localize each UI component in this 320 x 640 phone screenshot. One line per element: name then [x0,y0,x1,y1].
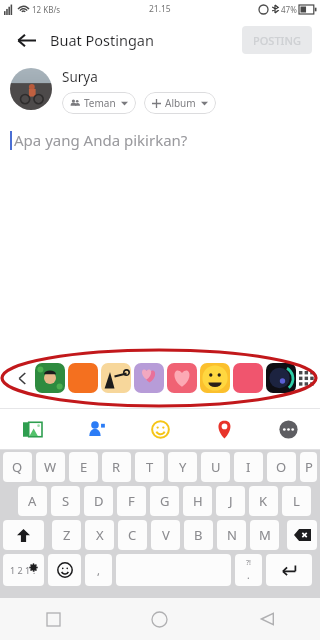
button[interactable]: Sticker [266,363,296,393]
button[interactable]: Sticker [68,363,98,393]
staticText: P [305,458,313,476]
staticText: W [44,458,57,476]
button[interactable]: T [135,452,164,482]
staticText: M [259,526,271,544]
staticText: Teman [84,96,116,110]
button[interactable] [10,68,52,110]
button[interactable]: Sticker [134,363,164,393]
button[interactable]: Check in [192,409,256,449]
button[interactable]: , [85,554,112,586]
button[interactable]: Sticker [101,363,131,393]
button[interactable]: Back [10,24,42,56]
staticText: C [128,526,137,544]
staticText: Buat Postingan [50,30,154,50]
staticText: 1 2 1 ? [10,564,37,576]
staticText: H [193,492,203,510]
staticText: Album [165,96,196,110]
staticText: T [146,458,154,476]
staticText: U [211,458,221,476]
staticText: F [128,492,135,510]
staticText: Surya [62,68,98,86]
staticText: L [293,492,300,510]
button[interactable]: ?! [235,554,262,586]
staticText: O [276,458,287,476]
button[interactable]: Sticker [167,363,197,393]
button[interactable]: F [117,486,146,516]
button[interactable]: Tag people [64,409,128,449]
button[interactable]: L [282,486,311,516]
button[interactable]: Sticker [233,363,263,393]
button[interactable]: More options [256,409,320,449]
button[interactable]: R [102,452,131,482]
button[interactable]: V [151,520,180,550]
button[interactable]: D [84,486,113,516]
staticText: Z [63,526,71,544]
staticText: . [247,568,250,582]
staticText: POSTING [253,33,301,48]
button[interactable]: A [18,486,47,516]
button[interactable]: POSTING [242,26,312,54]
button[interactable]: G [150,486,179,516]
button[interactable]: Feeling [128,409,192,449]
staticText: V [162,526,170,544]
staticText: 12 KB/s [32,4,61,15]
button[interactable]: 1 2 1 ? [3,554,44,586]
staticText: , [97,563,100,578]
button[interactable]: Album [144,92,216,114]
staticText: Q [12,458,23,476]
staticText: Apa yang Anda pikirkan? [14,130,188,150]
button[interactable]: Back [213,598,320,640]
staticText: E [80,458,88,476]
staticText: X [96,526,104,544]
button[interactable]: Teman [62,92,136,114]
button[interactable]: J [216,486,245,516]
button[interactable]: C [118,520,147,550]
button[interactable]: E [69,452,98,482]
button[interactable] [48,554,81,586]
staticText: D [94,492,104,510]
button[interactable] [287,520,317,550]
staticText: 21.15 [149,3,171,15]
button[interactable]: W [36,452,65,482]
button[interactable] [3,520,44,550]
button[interactable]: Y [168,452,197,482]
button[interactable]: I [234,452,263,482]
button[interactable]: M [250,520,279,550]
button[interactable]: Q [3,452,32,482]
staticText: J [229,492,233,510]
staticText: N [227,526,237,544]
staticText: A [28,492,37,510]
staticText: 47% [281,4,297,15]
button[interactable]: Sticker [200,363,230,393]
staticText: S [62,492,70,510]
staticText: Y [179,458,187,476]
button[interactable]: X [85,520,114,550]
button[interactable]: U [201,452,230,482]
staticText: ?! [246,558,251,568]
button[interactable] [266,554,312,586]
button[interactable]: H [183,486,212,516]
button[interactable]: Recents [0,598,106,640]
button[interactable]: B [184,520,213,550]
button[interactable]: O [267,452,296,482]
button[interactable]: S [51,486,80,516]
staticText: B [194,526,203,544]
button[interactable]: All stickers [299,363,314,393]
staticText: I [246,458,251,476]
staticText: K [259,492,268,510]
button[interactable]: K [249,486,278,516]
button[interactable]: Previous [12,368,32,388]
button[interactable]: P [300,452,317,482]
button[interactable]: Sticker [35,363,65,393]
staticText: G [160,492,170,510]
button[interactable]: N [217,520,246,550]
button[interactable]: Z [52,520,81,550]
staticText: R [112,458,121,476]
button[interactable]: Home [106,598,213,640]
button[interactable]: Photo [0,409,64,449]
